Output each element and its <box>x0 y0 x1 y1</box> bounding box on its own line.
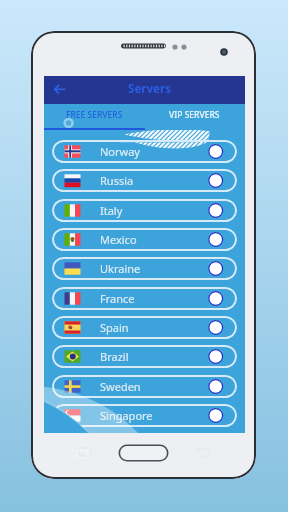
button[interactable]: Spain <box>52 316 237 339</box>
button[interactable]: Italy <box>52 199 237 222</box>
button[interactable]: Back <box>44 76 72 104</box>
staticText: Spain <box>100 320 129 335</box>
staticText: Brazil <box>100 349 129 364</box>
staticText: France <box>100 291 135 306</box>
staticText: Ukraine <box>100 261 141 276</box>
staticText: Italy <box>100 203 123 218</box>
staticText: Singapore <box>100 408 153 423</box>
staticText: VIP SERVERS <box>169 109 220 121</box>
button[interactable]: Singapore <box>52 404 237 427</box>
button[interactable]: Brazil <box>52 345 237 368</box>
staticText: Sweden <box>100 379 141 394</box>
button[interactable]: FREE SERVERS <box>44 104 144 130</box>
button[interactable]: Ukraine <box>52 257 237 280</box>
staticText: Servers <box>128 81 172 97</box>
staticText: Mexico <box>100 232 137 247</box>
button[interactable]: Sweden <box>52 375 237 398</box>
button[interactable]: Mexico <box>52 228 237 251</box>
staticText: Norway <box>100 144 140 159</box>
button[interactable]: VIP SERVERS <box>144 104 245 130</box>
staticText: FREE SERVERS <box>66 109 123 121</box>
button[interactable]: France <box>52 287 237 310</box>
button[interactable]: Russia <box>52 169 237 192</box>
button[interactable]: Norway <box>52 140 237 163</box>
staticText: Russia <box>100 173 134 188</box>
